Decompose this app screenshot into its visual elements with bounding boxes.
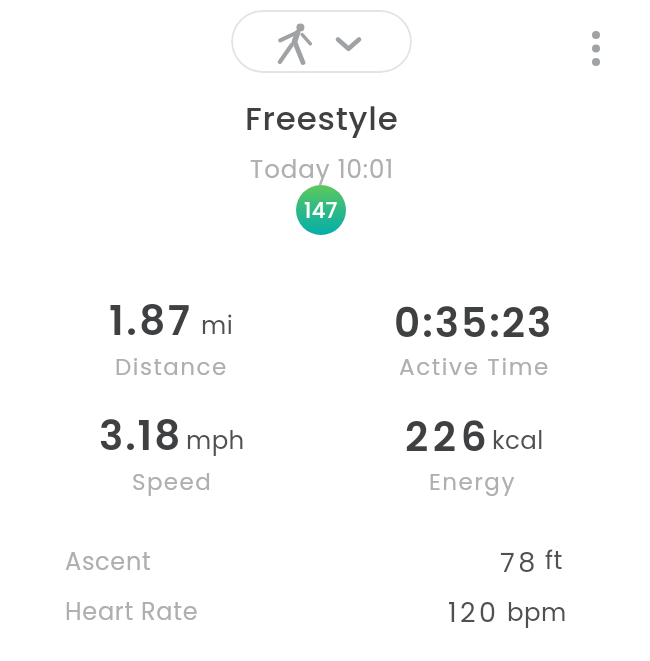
staticText: 120 — [448, 594, 500, 632]
staticText: 1.87 — [109, 292, 193, 349]
button[interactable] — [40, 288, 325, 392]
button[interactable]: Activity score 147 — [296, 185, 346, 235]
button[interactable] — [0, 536, 650, 584]
staticText: 0:35:23 — [394, 294, 554, 351]
staticText: Freestyle — [245, 96, 399, 142]
button[interactable] — [325, 288, 610, 392]
staticText: Speed — [132, 466, 213, 498]
staticText: Active Time — [399, 351, 550, 383]
staticText: mi — [201, 308, 234, 342]
staticText: Ascent — [65, 545, 152, 579]
staticText: 147 — [304, 196, 338, 225]
staticText: kcal — [492, 423, 544, 457]
staticText: Heart Rate — [65, 595, 199, 629]
staticText: ft — [545, 543, 563, 577]
staticText: 3.18 — [99, 407, 183, 464]
button[interactable]: Walking, change activity type — [231, 10, 412, 73]
staticText: bpm — [507, 595, 567, 629]
staticText: Today 10:01 — [250, 152, 394, 186]
button[interactable] — [0, 586, 650, 634]
staticText: mph — [186, 423, 245, 457]
button[interactable] — [40, 403, 325, 507]
staticText: 226 — [405, 408, 492, 465]
button[interactable]: More options — [574, 26, 618, 70]
staticText: 78 — [500, 544, 539, 582]
staticText: Energy — [429, 466, 516, 498]
button[interactable] — [325, 403, 610, 507]
staticText: Distance — [115, 351, 228, 383]
